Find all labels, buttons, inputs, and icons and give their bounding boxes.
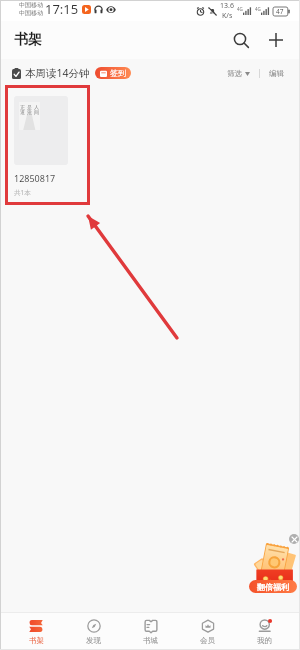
staticText: 47: [276, 7, 284, 16]
button[interactable]: Promotion: [253, 545, 295, 586]
button[interactable]: 会员: [179, 613, 236, 650]
staticText: 正 道: [20, 104, 25, 116]
staticText: 本周读14分钟: [25, 66, 90, 80]
staticText: 人 间: [34, 104, 39, 116]
staticText: 书架: [14, 31, 42, 49]
staticText: 我的: [257, 636, 272, 645]
staticText: 中国移动: [19, 9, 43, 17]
button[interactable]: 编辑: [269, 69, 284, 78]
staticText: 中国移动: [19, 1, 43, 9]
staticText: 13.6: [220, 1, 234, 11]
staticText: 筛选: [227, 69, 242, 78]
button[interactable]: 书城: [122, 613, 179, 650]
button[interactable]: 书架: [7, 613, 65, 650]
staticText: 12850817: [14, 172, 56, 184]
button[interactable]: 正 道: [14, 96, 68, 165]
staticText: 书架: [29, 636, 44, 645]
button[interactable]: 翻倍福利: [249, 580, 297, 593]
staticText: 翻倍福利: [257, 582, 289, 592]
button[interactable]: Close promotion: [289, 534, 299, 544]
button[interactable]: 签到: [95, 67, 131, 79]
button[interactable]: 筛选: [227, 69, 250, 78]
staticText: K/s: [222, 11, 233, 21]
button[interactable]: Search: [229, 28, 253, 52]
staticText: 签到: [110, 68, 126, 78]
staticText: 4G: [237, 6, 243, 12]
staticText: 共1本: [14, 188, 31, 197]
button[interactable]: Add book: [264, 28, 288, 52]
staticText: 书城: [143, 636, 158, 645]
staticText: 发现: [86, 636, 101, 645]
staticText: 是 沧: [27, 104, 32, 116]
button[interactable]: 发现: [65, 613, 122, 650]
button[interactable]: 我的: [236, 613, 293, 650]
staticText: 4G: [255, 6, 261, 12]
staticText: 会员: [200, 636, 215, 645]
staticText: 17:15: [45, 0, 79, 18]
